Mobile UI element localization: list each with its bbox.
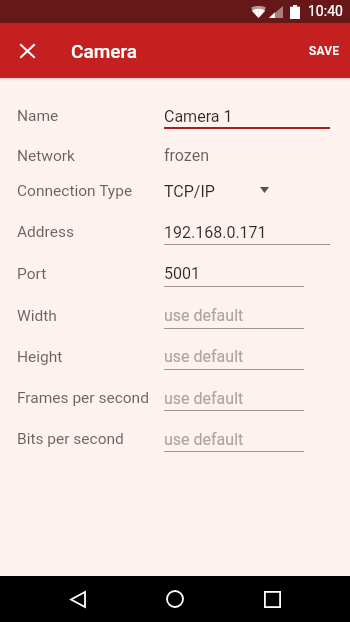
button[interactable] <box>0 421 350 461</box>
staticText: Camera <box>71 40 138 62</box>
staticText: use default <box>164 389 244 408</box>
staticText: 5001 <box>164 264 200 283</box>
staticText: Bits per second <box>17 430 124 448</box>
staticText: Network <box>17 147 75 165</box>
staticText: use default <box>164 306 244 325</box>
staticText: Camera 1 <box>164 107 233 126</box>
staticText: SAVE <box>309 44 340 58</box>
staticText: use default <box>164 347 244 366</box>
staticText: Connection Type <box>17 182 133 200</box>
button[interactable]: Close <box>9 32 46 69</box>
staticText: Height <box>17 348 63 366</box>
staticText: Name <box>17 107 59 125</box>
button[interactable] <box>0 214 350 256</box>
staticText: use default <box>164 430 244 449</box>
staticText: 10:40 <box>308 3 343 19</box>
staticText: 192.168.0.171 <box>164 223 267 242</box>
button[interactable] <box>0 137 350 173</box>
staticText: TCP/IP <box>164 182 215 201</box>
button[interactable] <box>0 297 350 338</box>
button[interactable] <box>0 379 350 420</box>
button[interactable] <box>0 98 350 138</box>
button[interactable] <box>0 255 350 297</box>
button[interactable] <box>0 173 350 214</box>
button[interactable]: Back <box>55 576 101 622</box>
button[interactable] <box>0 338 350 379</box>
staticText: Frames per second <box>17 389 149 407</box>
staticText: frozen <box>164 146 209 165</box>
button[interactable]: Home <box>152 576 198 622</box>
button[interactable]: Recents <box>249 576 295 622</box>
staticText: Address <box>17 223 74 241</box>
staticText: Width <box>17 307 57 325</box>
staticText: Port <box>17 265 47 283</box>
button[interactable]: SAVE <box>298 25 350 75</box>
